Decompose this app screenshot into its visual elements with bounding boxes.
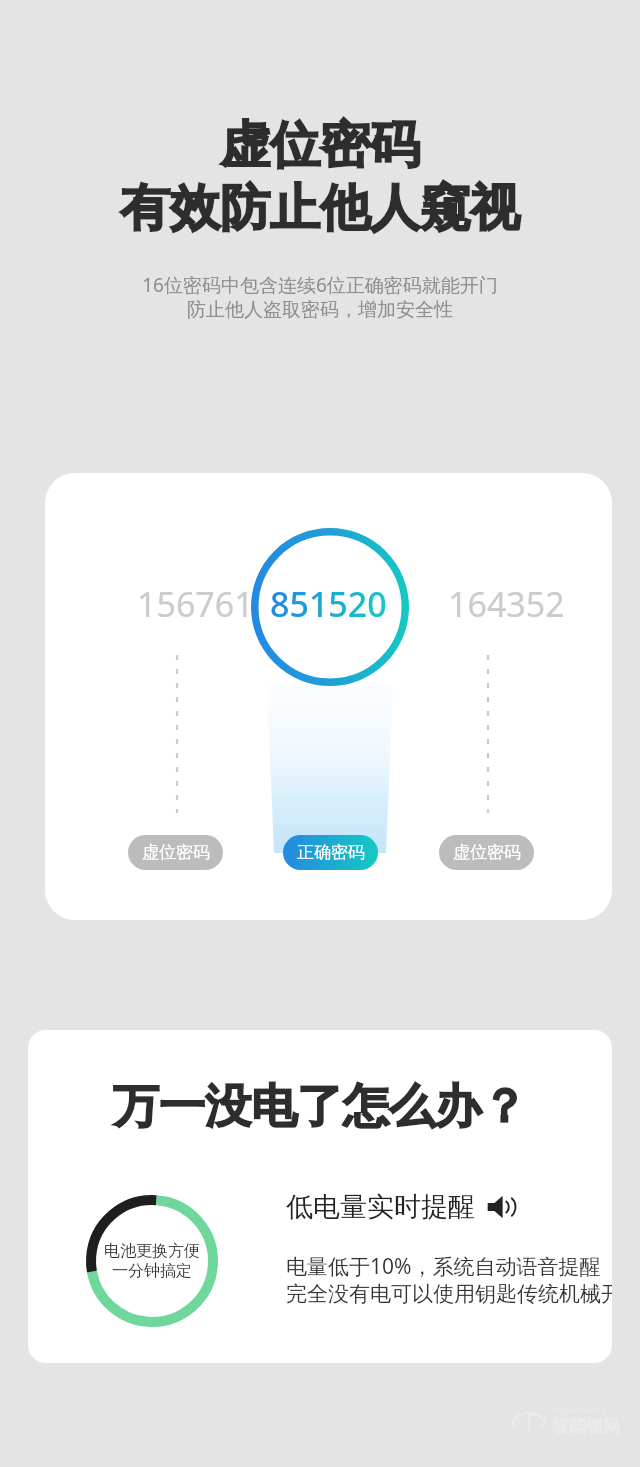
staticText: 一分钟搞定 xyxy=(112,1261,192,1281)
staticText: 851520 xyxy=(270,581,387,627)
staticText: 电池更换方便 xyxy=(104,1241,200,1261)
other: Sound alert xyxy=(487,1193,521,1221)
staticText: 虚位密码 xyxy=(453,842,521,863)
staticText: 万一没电了怎么办？ xyxy=(28,1078,612,1136)
button[interactable]: 156761 xyxy=(45,473,612,920)
staticText: 虚位密码 xyxy=(0,114,640,177)
staticText: 虚位密码 xyxy=(142,842,210,863)
staticText: 正确密码 xyxy=(297,842,365,863)
button[interactable]: 虚位密码 xyxy=(439,835,534,870)
button[interactable]: 虚位密码 xyxy=(128,835,223,870)
staticText: 防止他人盗取密码，增加安全性 xyxy=(0,298,640,322)
staticText: 16位密码中包含连续6位正确密码就能开门 xyxy=(0,272,640,298)
staticText: 有效防止他人窥视 xyxy=(0,177,640,240)
staticText: 电量低于10%，系统自动语音提醒 xyxy=(286,1252,601,1281)
button[interactable]: 万一没电了怎么办？ xyxy=(28,1030,612,1363)
staticText: 164352 xyxy=(448,581,565,627)
staticText: 完全没有电可以使用钥匙传统机械开锁 xyxy=(286,1281,612,1307)
staticText: 156761 xyxy=(137,581,254,627)
button[interactable]: 正确密码 xyxy=(283,835,378,870)
staticText: 低电量实时提醒 xyxy=(286,1190,475,1224)
